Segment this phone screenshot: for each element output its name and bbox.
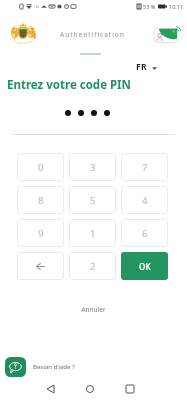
other: Effacer: [36, 263, 45, 270]
staticText: 53 %: [143, 3, 156, 10]
button[interactable]: OK: [121, 252, 168, 280]
button[interactable]: 1: [69, 219, 116, 247]
staticText: 10s: [34, 5, 39, 9]
button[interactable]: Applications recentes: [120, 378, 140, 400]
button[interactable]: 3: [69, 153, 116, 181]
staticText: 5: [90, 194, 96, 207]
staticText: FR: [136, 61, 147, 73]
button[interactable]: 5: [69, 186, 116, 214]
staticText: 6: [142, 227, 148, 240]
button[interactable]: 4: [121, 186, 168, 214]
staticText: Besoin d'aide ?: [33, 363, 75, 371]
button[interactable]: Accueil: [80, 378, 100, 400]
button[interactable]: Retour: [40, 378, 60, 400]
button[interactable]: 0: [17, 153, 64, 181]
button[interactable]: FR: [136, 61, 157, 73]
staticText: 0: [38, 161, 44, 174]
staticText: 8: [38, 194, 44, 207]
staticText: OK: [139, 261, 151, 272]
button[interactable]: Effacer: [17, 252, 64, 280]
staticText: 7: [142, 161, 148, 174]
staticText: 9: [38, 227, 44, 240]
staticText: Entrez votre code PIN: [7, 77, 131, 93]
button[interactable]: 9: [17, 219, 64, 247]
staticText: 2: [90, 260, 96, 273]
staticText: 1: [90, 227, 96, 240]
staticText: 3: [90, 161, 96, 174]
button[interactable]: Besoin d'aide ?: [5, 357, 75, 377]
button[interactable]: Carte d'identite NFC: [148, 22, 184, 46]
staticText: 4: [142, 194, 148, 207]
button[interactable]: Annuler: [0, 305, 187, 314]
staticText: 10:11: [169, 3, 184, 10]
staticText: Authentification: [60, 30, 125, 39]
button[interactable]: 2: [69, 252, 116, 280]
button[interactable]: 8: [17, 186, 64, 214]
button[interactable]: 7: [121, 153, 168, 181]
button[interactable]: 6: [121, 219, 168, 247]
